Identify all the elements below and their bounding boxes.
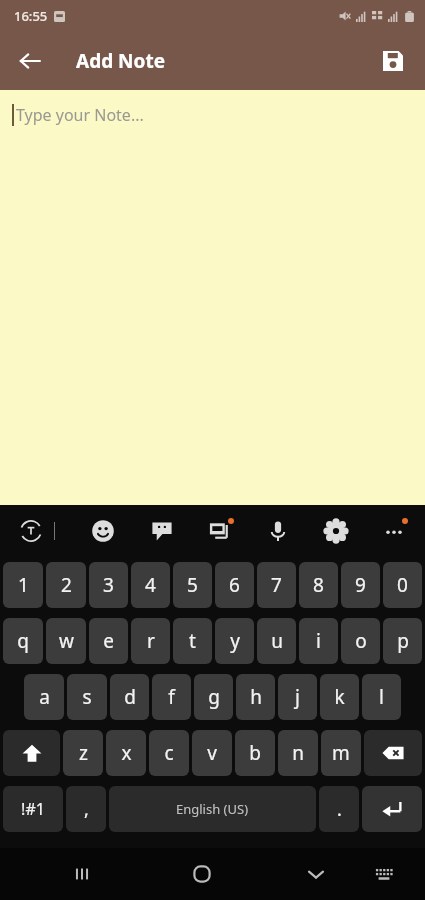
button[interactable]: Stickers <box>145 514 179 548</box>
staticText: c <box>164 740 174 766</box>
staticText: 3 <box>103 572 114 598</box>
staticText: p <box>397 628 409 654</box>
button[interactable]: 2 <box>46 562 86 608</box>
staticText: 0 <box>397 572 408 598</box>
staticText: Type your Note... <box>16 104 144 126</box>
staticText: 16:55 <box>14 7 48 25</box>
staticText: j <box>295 684 300 710</box>
button[interactable]: f <box>152 674 191 720</box>
button[interactable]: Back <box>8 39 52 83</box>
staticText: h <box>250 684 262 710</box>
button[interactable]: z <box>63 730 103 776</box>
button[interactable]: c <box>149 730 189 776</box>
staticText: x <box>121 740 132 766</box>
staticText: English (US) <box>176 800 249 818</box>
staticText: r <box>147 628 155 654</box>
staticText: !#1 <box>21 798 45 820</box>
button[interactable]: w <box>46 618 86 664</box>
staticText: s <box>82 684 92 710</box>
staticText: 2 <box>61 572 72 598</box>
staticText: Add Note <box>76 48 166 74</box>
staticText: i <box>316 628 321 654</box>
staticText: 4 <box>145 572 156 598</box>
staticText: d <box>124 684 136 710</box>
staticText: v <box>207 740 217 766</box>
button[interactable]: s <box>67 674 107 720</box>
button[interactable]: k <box>320 674 359 720</box>
staticText: b <box>249 740 261 766</box>
staticText: y <box>230 628 240 654</box>
button[interactable]: Type your Note... <box>0 90 425 505</box>
button[interactable]: Enter <box>362 786 422 832</box>
button[interactable]: . <box>319 786 359 832</box>
button[interactable]: Save <box>371 39 415 83</box>
staticText: g <box>208 684 220 710</box>
button[interactable]: Shift <box>3 730 60 776</box>
button[interactable]: 4 <box>131 562 170 608</box>
button[interactable]: Clipboard <box>203 514 237 548</box>
button[interactable]: Change keyboard <box>362 852 406 896</box>
button[interactable]: Keyboard settings <box>319 514 353 548</box>
staticText: q <box>17 628 29 654</box>
staticText: 1 <box>18 572 29 598</box>
button[interactable]: i <box>299 618 338 664</box>
button[interactable]: r <box>131 618 170 664</box>
button[interactable]: Emoji <box>86 514 120 548</box>
button[interactable]: h <box>236 674 275 720</box>
button[interactable]: Backspace <box>364 730 422 776</box>
button[interactable]: g <box>194 674 233 720</box>
button[interactable]: 5 <box>173 562 212 608</box>
staticText: t <box>189 628 196 654</box>
button[interactable]: 6 <box>215 562 254 608</box>
staticText: n <box>292 740 304 766</box>
button[interactable]: o <box>341 618 380 664</box>
staticText: k <box>334 684 345 710</box>
staticText: 9 <box>355 572 366 598</box>
button[interactable]: 8 <box>299 562 338 608</box>
staticText: m <box>332 740 350 766</box>
staticText: w <box>59 628 74 654</box>
button[interactable]: !#1 <box>3 786 63 832</box>
staticText: 6 <box>229 572 240 598</box>
button[interactable]: 1 <box>3 562 43 608</box>
button[interactable]: 7 <box>257 562 296 608</box>
staticText: o <box>355 628 367 654</box>
button[interactable]: n <box>278 730 318 776</box>
button[interactable]: 3 <box>89 562 128 608</box>
staticText: z <box>79 740 88 766</box>
staticText: e <box>103 628 114 654</box>
button[interactable]: Voice input <box>261 514 295 548</box>
button[interactable]: Recent apps <box>60 852 104 896</box>
button[interactable]: q <box>3 618 43 664</box>
button[interactable]: u <box>257 618 296 664</box>
staticText: , <box>84 797 89 822</box>
button[interactable]: 9 <box>341 562 380 608</box>
button[interactable]: More options <box>377 514 411 548</box>
button[interactable]: y <box>215 618 254 664</box>
staticText: . <box>337 797 342 822</box>
button[interactable]: Home <box>180 852 224 896</box>
staticText: f <box>168 684 175 710</box>
button[interactable]: x <box>106 730 146 776</box>
button[interactable]: p <box>383 618 422 664</box>
button[interactable]: Hide keyboard <box>294 852 338 896</box>
button[interactable]: e <box>89 618 128 664</box>
button[interactable]: j <box>278 674 317 720</box>
staticText: 7 <box>271 572 282 598</box>
staticText: u <box>271 628 283 654</box>
button[interactable]: a <box>24 674 64 720</box>
button[interactable]: v <box>192 730 232 776</box>
button[interactable]: d <box>110 674 149 720</box>
button[interactable]: b <box>235 730 275 776</box>
button[interactable]: , <box>66 786 106 832</box>
button[interactable]: 0 <box>383 562 422 608</box>
staticText: 5 <box>187 572 198 598</box>
staticText: l <box>379 684 384 710</box>
staticText: a <box>39 684 50 710</box>
button[interactable]: m <box>321 730 361 776</box>
button[interactable]: t <box>173 618 212 664</box>
button[interactable]: l <box>362 674 401 720</box>
button[interactable]: English (US) <box>109 786 316 832</box>
staticText: 8 <box>313 572 324 598</box>
button[interactable]: Text correction <box>14 514 48 548</box>
